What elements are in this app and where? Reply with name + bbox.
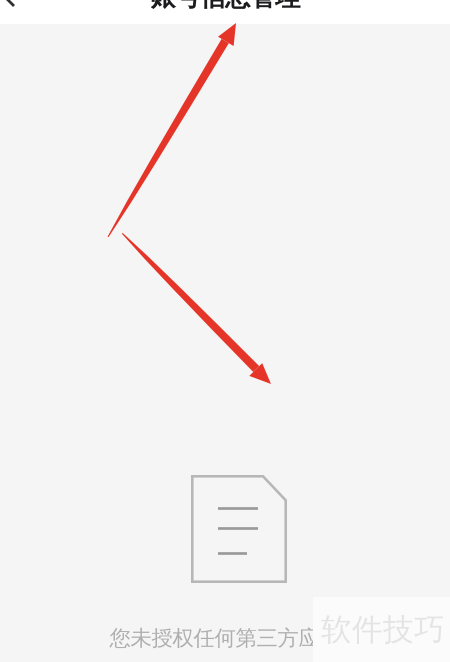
button[interactable]: Back (0, 0, 44, 24)
staticText: 软件技巧 (321, 611, 445, 649)
staticText: 账号信息管理 (150, 0, 300, 12)
staticText: 您未授权任何第三方应用 (109, 625, 340, 651)
